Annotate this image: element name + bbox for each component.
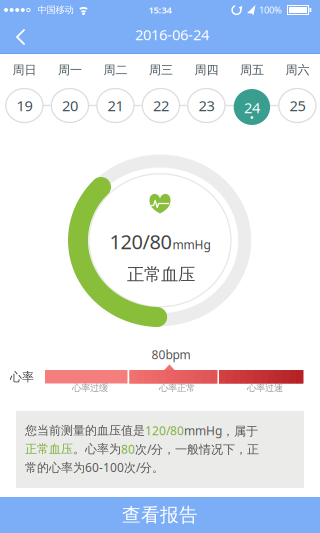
staticText: 常的心率为60-100次/分。 bbox=[25, 459, 164, 475]
staticText: 周五 bbox=[240, 63, 264, 77]
staticText: 80 bbox=[121, 441, 135, 457]
staticText: 120/80 bbox=[145, 422, 184, 438]
staticText: 周日 bbox=[12, 63, 36, 77]
button[interactable]: 周日 bbox=[1, 58, 47, 128]
staticText: 21 bbox=[107, 96, 123, 115]
button[interactable]: 周五 bbox=[229, 58, 275, 128]
staticText: mmHg，属于 bbox=[184, 422, 258, 438]
staticText: 24 bbox=[244, 98, 260, 117]
staticText: 23 bbox=[198, 96, 214, 115]
staticText: 22 bbox=[153, 96, 169, 115]
staticText: 120/80 bbox=[109, 228, 171, 255]
staticText: 2016-06-24 bbox=[135, 25, 209, 44]
staticText: 周三 bbox=[149, 63, 173, 77]
staticText: 。心率为 bbox=[73, 442, 121, 456]
staticText: 周一 bbox=[58, 63, 82, 77]
staticText: 19 bbox=[16, 96, 32, 115]
staticText: 心率过速 bbox=[247, 382, 283, 394]
staticText: 15:34 bbox=[148, 4, 171, 16]
staticText: 中国移动 bbox=[37, 4, 73, 16]
button[interactable]: Back bbox=[0, 20, 40, 54]
staticText: 心率正常 bbox=[159, 382, 195, 394]
staticText: 正常血压 bbox=[25, 442, 73, 456]
button[interactable]: 周一 bbox=[47, 58, 93, 128]
staticText: 次/分，一般情况下，正 bbox=[135, 441, 259, 457]
staticText: 80bpm bbox=[151, 346, 190, 362]
staticText: 周四 bbox=[194, 63, 218, 77]
staticText: 周六 bbox=[285, 63, 309, 77]
button[interactable]: 周六 bbox=[274, 58, 320, 128]
staticText: 正常血压 bbox=[127, 264, 195, 285]
button[interactable]: 周二 bbox=[92, 58, 138, 128]
staticText: 20 bbox=[62, 96, 78, 115]
staticText: 您当前测量的血压值是 bbox=[25, 423, 145, 438]
staticText: 周二 bbox=[103, 63, 127, 77]
staticText: 25 bbox=[289, 96, 305, 115]
staticText: 查看报告 bbox=[122, 503, 198, 526]
staticText: mmHg bbox=[172, 237, 210, 252]
button[interactable]: 查看报告 bbox=[0, 497, 320, 533]
staticText: 心率 bbox=[10, 370, 34, 384]
staticText: 100% bbox=[259, 4, 282, 16]
staticText: 心率过缓 bbox=[72, 382, 108, 394]
button[interactable]: 周四 bbox=[183, 58, 229, 128]
button[interactable]: 周三 bbox=[138, 58, 184, 128]
